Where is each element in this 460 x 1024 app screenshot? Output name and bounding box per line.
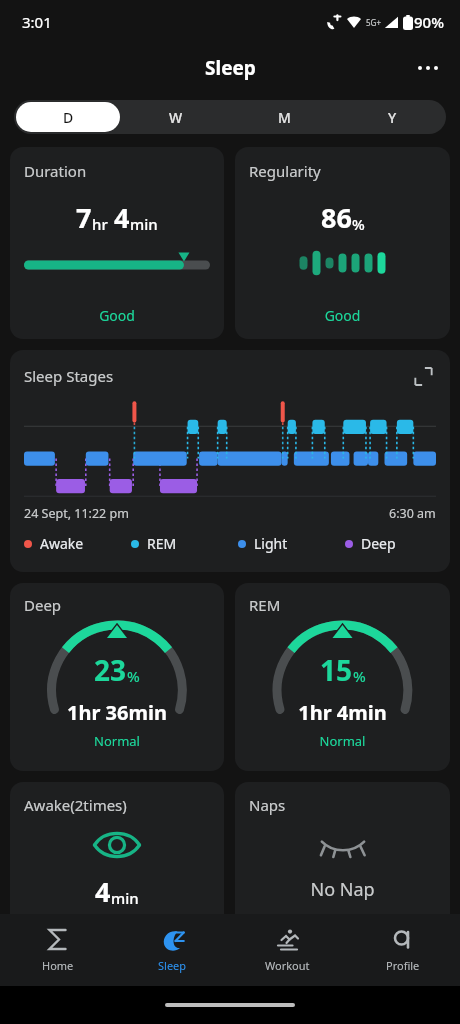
button[interactable]: REM [235,583,450,771]
button[interactable]: W [124,102,228,132]
staticText: Awake [40,534,84,553]
button[interactable]: Workout [230,914,345,986]
button[interactable]: Duration [10,147,224,339]
staticText: 15 [320,651,353,689]
staticText: 86 [321,199,352,236]
staticText: Home [42,958,74,973]
button[interactable]: Y [340,102,444,132]
button[interactable]: Profile [345,914,460,986]
button[interactable]: Regularity [235,147,450,339]
staticText: REM [249,595,281,615]
staticText: min [130,214,158,234]
staticText: 1hr 4min [249,699,436,726]
staticText: 24 Sept, 11:22 pm [24,505,129,522]
staticText: Profile [386,958,420,973]
staticText: Sleep [205,55,256,81]
button[interactable]: D [16,102,120,132]
staticText: Deep [361,534,396,553]
staticText: M [278,108,291,127]
staticText: Good [249,306,436,325]
button[interactable]: Deep [10,583,224,771]
button[interactable]: Home [0,914,115,986]
staticText: Good [24,306,210,325]
staticText: Normal [24,732,210,750]
button[interactable]: M [232,102,336,132]
staticText: % [353,666,366,686]
staticText: Naps [249,795,286,815]
staticText: Duration [24,161,87,181]
button[interactable]: Sleep [115,914,230,986]
staticText: Sleep [158,958,187,973]
staticText: 7 [76,199,92,236]
button[interactable]: More options [406,46,450,90]
staticText: hr [92,214,108,234]
button[interactable]: Expand sleep stages [410,363,436,389]
staticText: % [127,666,140,686]
staticText: Sleep Stages [24,366,114,386]
staticText: Light [254,534,288,553]
button[interactable]: Naps [235,782,450,932]
staticText: Awake(2times) [24,795,127,815]
staticText: Normal [249,732,436,750]
staticText: 3:01 [22,12,52,32]
staticText: 90% [414,12,444,32]
staticText: Workout [265,958,310,973]
staticText: Regularity [249,161,321,181]
staticText: No Nap [249,877,436,902]
staticText: REM [147,534,177,553]
staticText: min [111,888,139,908]
staticText: W [169,108,183,127]
staticText: 23 [94,651,127,689]
staticText: % [352,214,365,234]
staticText: Deep [24,595,62,615]
staticText: D [63,108,74,127]
staticText: 1hr 36min [24,699,210,726]
staticText: Y [388,108,397,127]
staticText: 4 [95,873,111,910]
staticText: 4 [114,199,130,236]
button[interactable]: Sleep Stages [10,350,450,572]
staticText: 5G+ [366,17,381,28]
staticText: 6:30 am [389,505,436,522]
button[interactable]: Awake(2times) [10,782,224,932]
